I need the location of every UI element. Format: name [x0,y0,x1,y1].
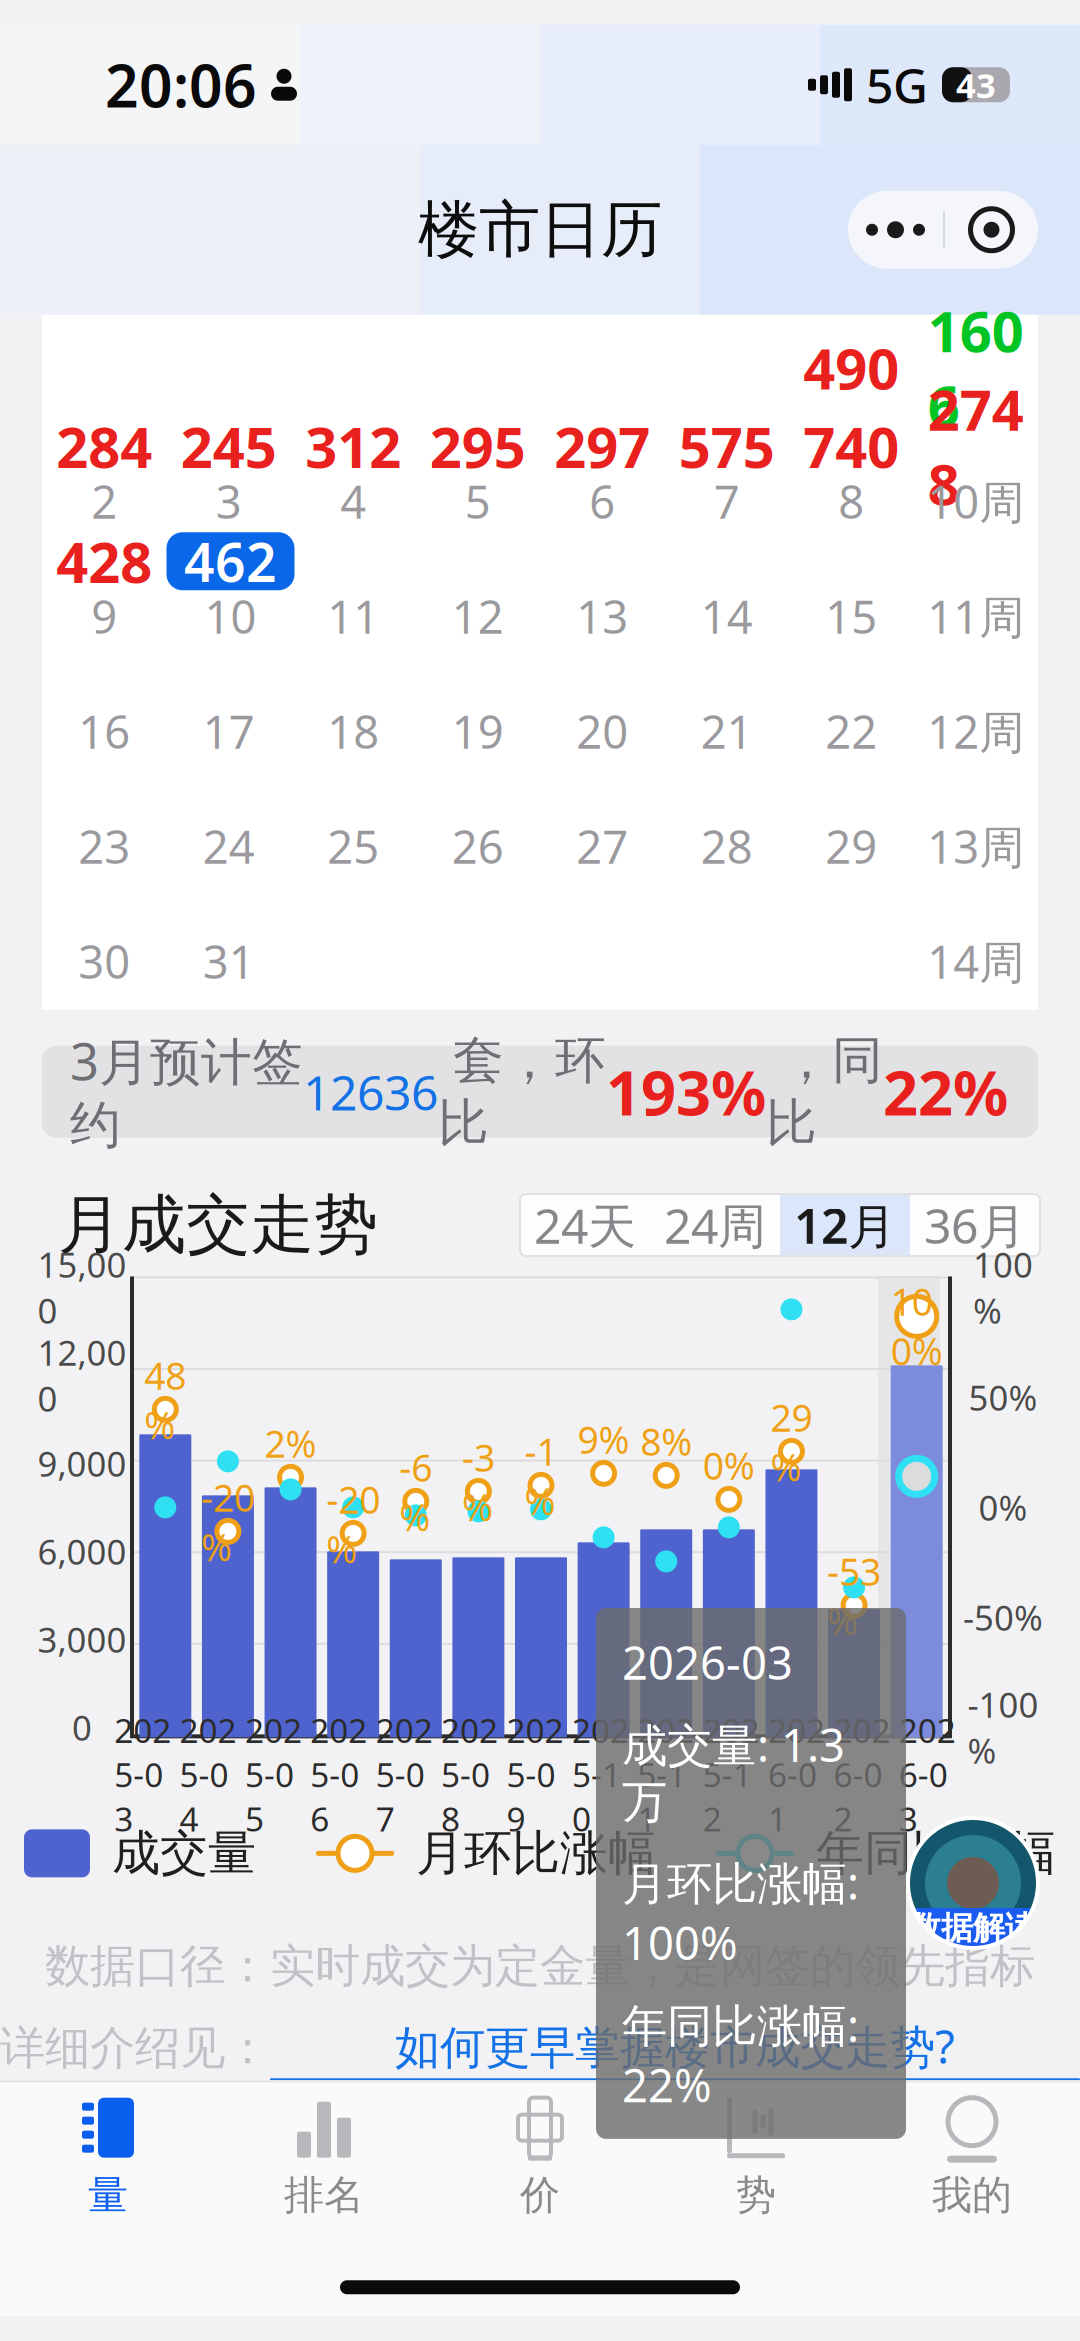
button[interactable] [166,877,291,983]
button[interactable] [913,532,1038,638]
staticText: 2025-08 [441,1708,498,1841]
button[interactable] [913,877,1038,983]
staticText: -3% [462,1432,495,1532]
button[interactable]: 312 [291,417,415,523]
staticText: 22% [883,1051,1008,1132]
button[interactable]: 更多与关闭 [848,191,1038,269]
button[interactable] [166,647,291,753]
staticText: 2 [91,471,117,531]
staticText: 20:06 [105,46,257,124]
button[interactable] [789,647,913,753]
staticText: 月环比涨幅: 100% [622,1852,859,1972]
button[interactable] [42,762,166,868]
staticText: 2025-10 [572,1708,629,1841]
staticText: 8% [640,1416,692,1466]
button[interactable]: 297 [540,417,664,523]
staticText: 9% [578,1414,630,1464]
button[interactable]: 12月 [780,1194,910,1256]
staticText: 18 [327,701,379,761]
button[interactable] [664,762,789,868]
staticText: 740 [803,409,899,483]
button[interactable]: 我的 [864,2082,1080,2232]
button[interactable]: 如何更早掌握楼市成交走势? [270,2016,1080,2080]
staticText: 套，环比 [438,1029,606,1154]
staticText: 成交量: 1.3万 [622,1714,845,1830]
staticText: 31 [203,931,255,991]
button[interactable]: 36月 [910,1194,1040,1256]
staticText: 25 [327,816,379,876]
staticText: -6% [399,1442,432,1542]
button[interactable] [42,647,166,753]
button[interactable] [664,532,789,638]
staticText: 22 [825,701,877,761]
staticText: 2026-03 [622,1632,793,1692]
button[interactable] [291,532,415,638]
staticText: 6,000 [37,1528,126,1574]
button[interactable] [540,762,664,868]
button[interactable]: 排名 [216,2082,432,2232]
button[interactable]: 295 [415,417,540,523]
staticText: 14周 [927,931,1024,991]
button[interactable] [415,647,540,753]
staticText: 13周 [927,816,1024,876]
button[interactable] [913,762,1038,868]
staticText: 数据解读 [909,1908,1037,1948]
button[interactable]: 2748 [913,417,1038,523]
button[interactable]: 价 [432,2082,648,2232]
staticText: 2026-03 [899,1708,956,1841]
staticText: 16 [78,701,130,761]
staticText: 12636 [303,1060,438,1124]
button[interactable] [42,877,166,983]
button[interactable]: 428 [42,532,166,638]
button[interactable]: 245 [166,417,291,523]
button[interactable] [415,532,540,638]
staticText: 2025-12 [703,1708,760,1841]
staticText: 245 [181,409,277,483]
button[interactable] [913,647,1038,753]
button[interactable]: 575 [664,417,789,523]
staticText: 3 [216,471,242,531]
staticText: -1% [524,1426,557,1526]
staticText: 楼市日历 [418,192,662,267]
staticText: 2025-05 [245,1708,302,1841]
staticText: ，同比 [766,1029,883,1154]
staticText: 28 [701,816,753,876]
button[interactable]: 740 [789,417,913,523]
staticText: 2025-06 [310,1708,367,1841]
button[interactable] [291,647,415,753]
button[interactable] [789,762,913,868]
button[interactable]: 势 [648,2082,864,2232]
button[interactable]: 284 [42,417,166,523]
staticText: 7 [714,471,740,531]
staticText: 2748 [928,372,1024,521]
button[interactable]: 量 [0,2082,216,2232]
button[interactable]: 24周 [650,1194,780,1256]
staticText: 3月预计签约 [70,1027,303,1156]
staticText: -20% [201,1472,255,1572]
button[interactable] [166,762,291,868]
staticText: 12 [452,586,504,646]
button[interactable]: 462 [166,532,291,638]
staticText: 12周 [927,701,1024,761]
button[interactable]: 24天 [520,1194,650,1256]
button[interactable] [291,762,415,868]
staticText: 9 [91,586,117,646]
staticText: 4 [340,471,366,531]
staticText: 11 [327,586,379,646]
button[interactable] [664,647,789,753]
button[interactable]: 数据解读 [908,1818,1038,1948]
staticText: 2025-07 [376,1708,433,1841]
button[interactable] [540,532,664,638]
staticText: 10 [204,586,256,646]
staticText: 27 [576,816,628,876]
staticText: 9,000 [37,1440,126,1486]
button[interactable] [789,532,913,638]
button[interactable] [415,762,540,868]
button[interactable] [540,647,664,753]
staticText: 19 [452,701,504,761]
